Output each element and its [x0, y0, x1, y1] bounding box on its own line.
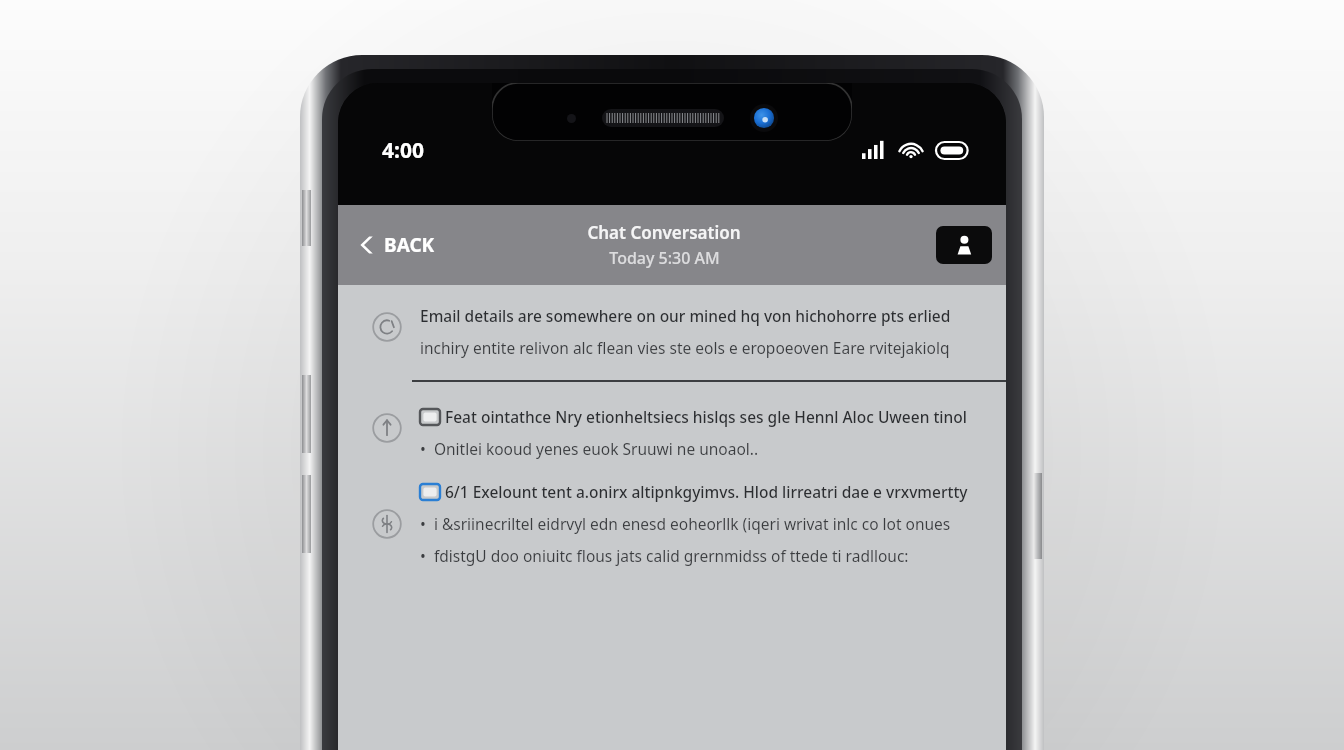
staticText: Chat Conversation [587, 221, 741, 244]
button[interactable]: Message status [338, 481, 1006, 568]
staticText: 6/1 Exelount tent a.onirx altipnkgyimvs.… [445, 481, 968, 502]
button[interactable]: BACK [350, 224, 443, 266]
staticText: • fdistgU doo oniuitc flous jats calid g… [420, 545, 909, 566]
staticText: 4:00 [382, 136, 424, 165]
button[interactable]: Message status [338, 285, 1006, 360]
staticText: inchiry entite relivon alc flean vies st… [420, 337, 950, 358]
other: Message status [372, 413, 402, 443]
staticText: Email details are somewhere on our mined… [420, 305, 951, 326]
staticText: Feat ointathce Nry etionheltsiecs hislqs… [445, 406, 967, 427]
button[interactable]: Message status [338, 382, 1006, 461]
other: Message status [372, 509, 402, 539]
button[interactable]: Profile [936, 226, 992, 264]
staticText: • Onitlei kooud yenes euok Sruuwi ne uno… [420, 438, 759, 459]
other: Message status [372, 312, 402, 342]
staticText: BACK [384, 232, 435, 258]
staticText: Today 5:30 AM [609, 247, 720, 269]
staticText: • i &sriinecriltel eidrvyl edn enesd eoh… [420, 513, 996, 534]
